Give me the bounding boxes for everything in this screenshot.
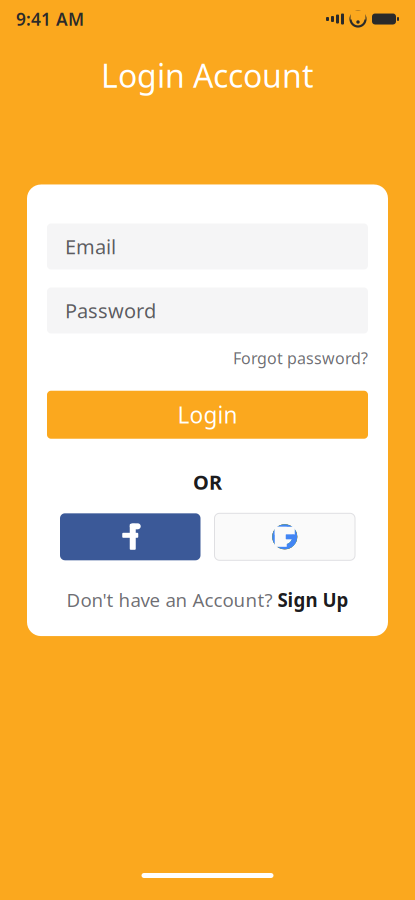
staticText: Email	[65, 233, 116, 260]
staticText: 9:41 AM	[16, 7, 84, 30]
staticText: Don't have an Account?	[66, 587, 272, 612]
button[interactable]: Sign in with Facebook	[60, 513, 200, 560]
staticText: Sign Up	[277, 587, 348, 612]
button[interactable]: Password	[47, 287, 368, 333]
button[interactable]: Email	[47, 223, 368, 269]
staticText: OR	[193, 469, 222, 495]
staticText: Login	[177, 400, 237, 430]
staticText: Login Account	[101, 54, 314, 96]
button[interactable]: Forgot password?	[233, 347, 368, 369]
staticText: Password	[65, 297, 156, 324]
button[interactable]: Sign in with Google	[214, 513, 355, 560]
button[interactable]: Login	[47, 391, 368, 439]
staticText: Forgot password?	[233, 347, 368, 369]
button[interactable]: Don't have an Account?	[66, 587, 348, 612]
